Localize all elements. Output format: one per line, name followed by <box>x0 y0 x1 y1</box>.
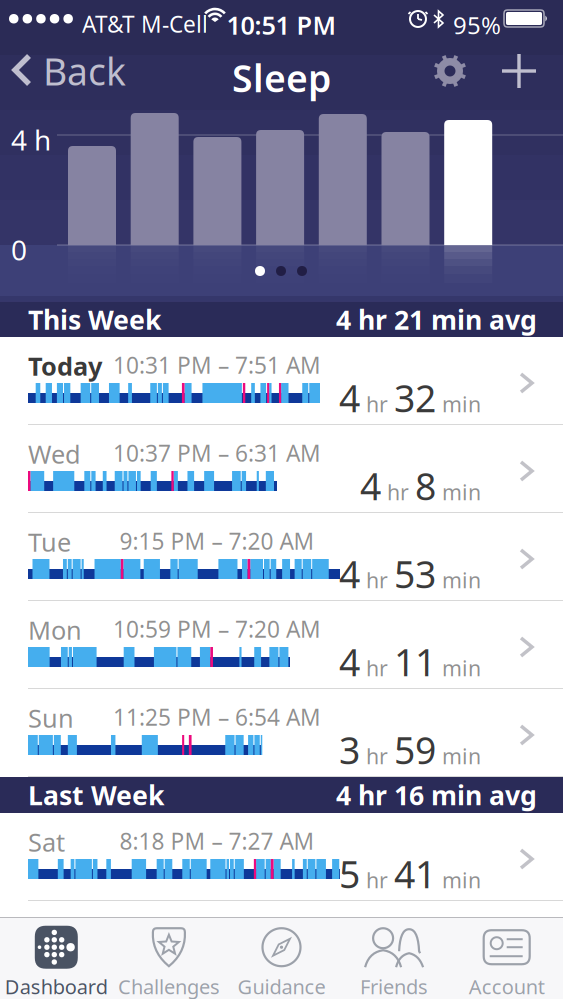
button[interactable]: Add <box>494 46 544 96</box>
staticText: 11 <box>394 637 436 687</box>
staticText: Wed <box>28 437 81 471</box>
button[interactable]: Back <box>0 40 126 102</box>
button[interactable]: Tue <box>0 513 563 601</box>
button[interactable]: Friends <box>338 919 450 998</box>
staticText: 59 <box>394 725 436 775</box>
staticText: 10:37 PM – 6:31 AM <box>113 438 321 468</box>
staticText: 10:31 PM – 7:51 AM <box>113 350 321 380</box>
staticText: min <box>442 654 481 682</box>
staticText: Sat <box>28 825 65 859</box>
staticText: Challenges <box>118 973 220 999</box>
button[interactable]: Sat <box>0 813 563 901</box>
staticText: 10:51 PM <box>226 8 336 42</box>
staticText: Today <box>28 349 102 383</box>
staticText: hr <box>366 654 388 682</box>
staticText: 4 <box>339 549 360 599</box>
staticText: 11:25 PM – 6:54 AM <box>113 702 321 732</box>
button[interactable]: Sun <box>0 689 563 777</box>
staticText: min <box>442 390 481 418</box>
staticText: min <box>442 866 481 894</box>
staticText: hr <box>366 390 388 418</box>
staticText: 4 <box>339 373 360 423</box>
button[interactable]: Settings <box>425 46 475 96</box>
staticText: min <box>442 478 481 506</box>
staticText: 0 <box>11 231 27 268</box>
staticText: 8:18 PM – 7:27 AM <box>119 826 314 856</box>
staticText: Guidance <box>237 973 325 999</box>
staticText: 4 h <box>11 121 51 158</box>
staticText: hr <box>366 566 388 594</box>
staticText: 4 <box>360 461 381 511</box>
staticText: 95% <box>453 9 501 41</box>
staticText: hr <box>366 742 388 770</box>
staticText: 5 <box>339 849 360 899</box>
button[interactable]: Mon <box>0 601 563 689</box>
button[interactable]: Wed <box>0 425 563 513</box>
staticText: Back <box>43 46 126 96</box>
staticText: Last Week <box>28 777 165 813</box>
staticText: AT&T M-Cell <box>82 9 208 39</box>
button[interactable]: Guidance <box>225 919 338 998</box>
staticText: hr <box>387 478 409 506</box>
button[interactable]: Dashboard <box>0 919 113 998</box>
staticText: min <box>442 566 481 594</box>
staticText: min <box>442 742 481 770</box>
staticText: 4 hr 16 min avg <box>336 777 537 813</box>
staticText: 41 <box>394 849 436 899</box>
staticText: 4 <box>339 637 360 687</box>
staticText: 8 <box>415 461 436 511</box>
staticText: Sun <box>28 701 74 735</box>
staticText: Tue <box>28 525 71 559</box>
button[interactable]: Account <box>450 919 563 998</box>
button[interactable]: Challenges <box>113 919 225 998</box>
staticText: 32 <box>394 373 436 423</box>
button[interactable]: Today <box>0 337 563 425</box>
staticText: Mon <box>28 613 82 647</box>
staticText: Dashboard <box>5 973 108 999</box>
staticText: 3 <box>339 725 360 775</box>
staticText: 53 <box>394 549 436 599</box>
staticText: Account <box>469 973 545 999</box>
staticText: 9:15 PM – 7:20 AM <box>119 526 314 556</box>
staticText: 10:59 PM – 7:20 AM <box>113 614 321 644</box>
staticText: This Week <box>28 302 162 337</box>
staticText: Friends <box>360 973 428 999</box>
staticText: Sleep <box>232 53 331 103</box>
staticText: hr <box>366 866 388 894</box>
staticText: 4 hr 21 min avg <box>336 302 537 337</box>
